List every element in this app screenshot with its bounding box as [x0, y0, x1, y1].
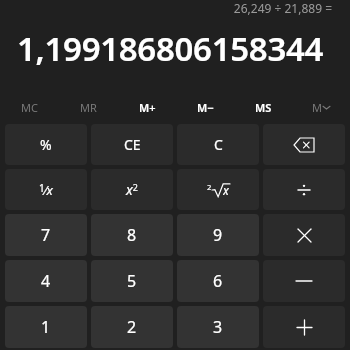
staticText: 1 [41, 316, 51, 338]
staticText: MR [80, 100, 97, 115]
button[interactable]: 1 [5, 306, 87, 348]
staticText: 26,249 ÷ 21,889 = [233, 0, 332, 16]
staticText: 5 [127, 270, 137, 292]
button[interactable]: 2 [91, 306, 173, 348]
button[interactable]: M+ [118, 92, 176, 122]
button[interactable]: % [5, 124, 87, 165]
staticText: 9 [213, 224, 223, 246]
button[interactable]: MC [0, 92, 59, 122]
staticText: 6 [213, 270, 223, 292]
button[interactable]: 6 [177, 260, 259, 302]
staticText: M [312, 100, 322, 115]
staticText: % [40, 135, 52, 154]
staticText: 2 [207, 182, 212, 192]
button[interactable]: Square root [177, 169, 259, 210]
button[interactable]: MS [234, 92, 292, 122]
button[interactable]: Multiply [263, 214, 345, 256]
staticText: CE [124, 135, 141, 154]
staticText: 1⁄x [39, 181, 53, 199]
staticText: x2 [126, 180, 138, 199]
staticText: M− [197, 100, 214, 115]
button[interactable]: C [177, 124, 259, 165]
button[interactable]: 4 [5, 260, 87, 302]
button[interactable]: Reciprocal [5, 169, 87, 210]
button[interactable]: 9 [177, 214, 259, 256]
button[interactable]: Subtract [263, 260, 345, 302]
button[interactable]: MR [59, 92, 118, 122]
button[interactable]: 5 [91, 260, 173, 302]
staticText: MS [255, 100, 272, 115]
staticText: C [214, 135, 223, 154]
button[interactable]: Backspace [263, 124, 345, 165]
staticText: 7 [41, 224, 51, 246]
staticText: x [223, 182, 229, 197]
staticText: 8 [127, 224, 137, 246]
button[interactable]: Add [263, 306, 345, 348]
button[interactable]: CE [91, 124, 173, 165]
staticText: MC [21, 100, 38, 115]
staticText: 3 [213, 316, 223, 338]
staticText: M+ [139, 100, 156, 115]
button[interactable]: 7 [5, 214, 87, 256]
button[interactable]: 3 [177, 306, 259, 348]
staticText: 1,199186806158344 [17, 26, 324, 71]
staticText: 4 [41, 270, 51, 292]
button[interactable]: Divide [263, 169, 345, 210]
button[interactable]: M− [176, 92, 234, 122]
staticText: 2 [127, 316, 137, 338]
button[interactable]: 8 [91, 214, 173, 256]
button[interactable]: Square [91, 169, 173, 210]
button[interactable]: Memory list [292, 92, 350, 122]
